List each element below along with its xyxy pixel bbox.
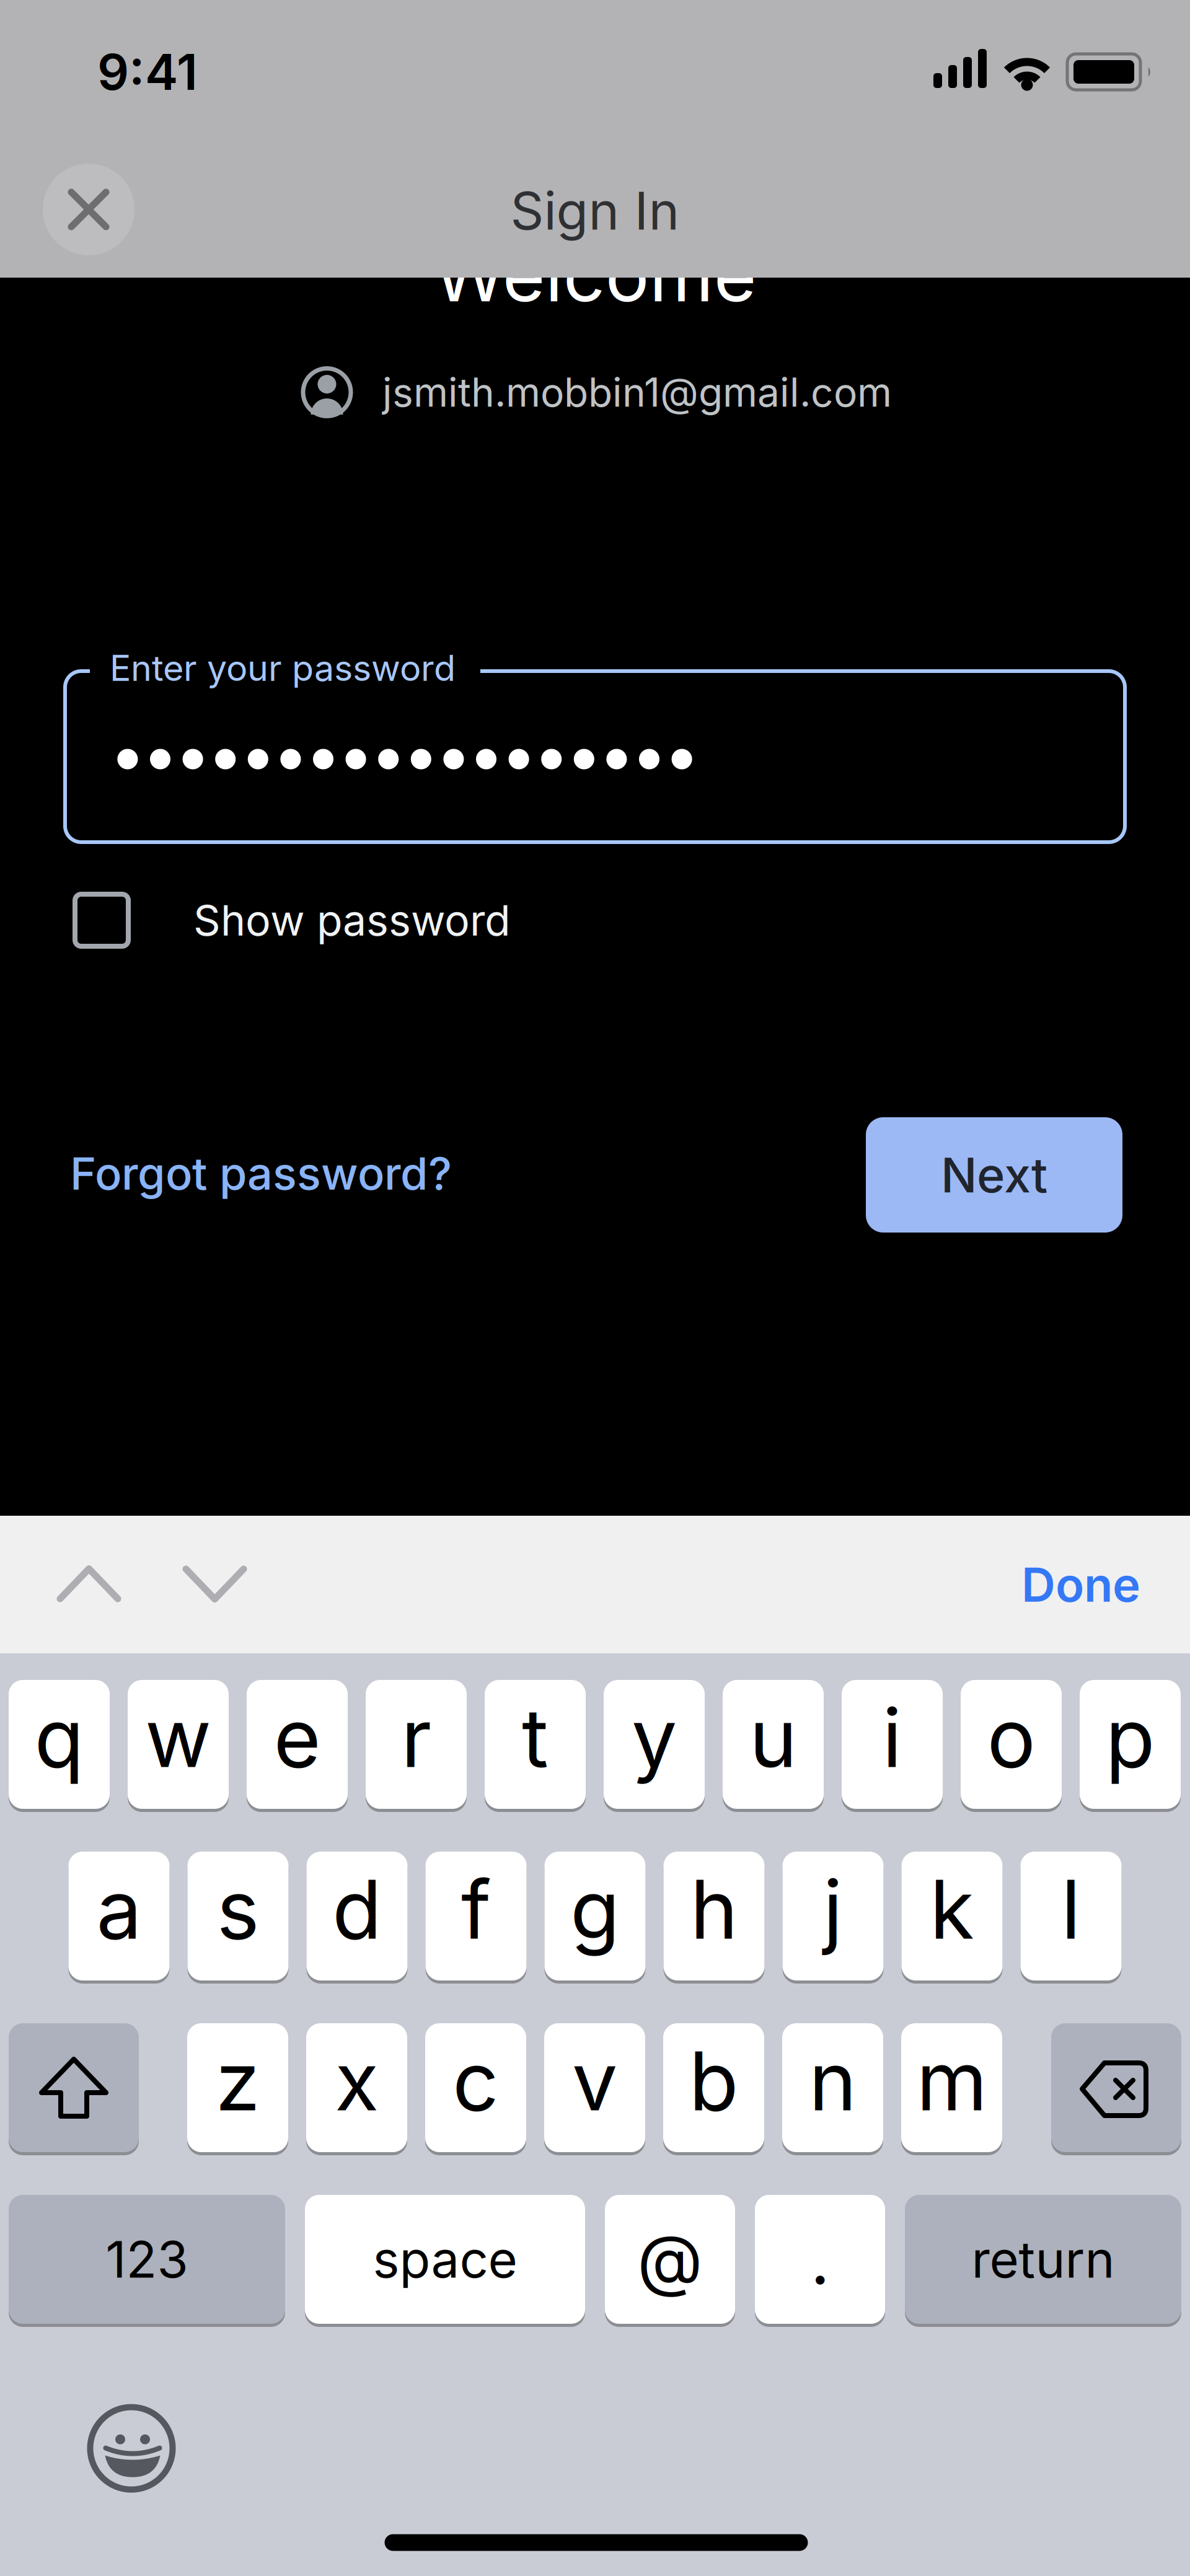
staticText: g xyxy=(570,1861,620,1957)
button[interactable]: Previous field xyxy=(58,1567,120,1601)
staticText: . xyxy=(810,2219,830,2299)
staticText: p xyxy=(1105,1690,1155,1785)
button[interactable]: o xyxy=(961,1680,1062,1809)
staticText: y xyxy=(632,1690,677,1785)
button[interactable]: jsmith.mobbin1@gmail.com xyxy=(303,368,892,416)
button[interactable]: l xyxy=(1020,1852,1122,1980)
button[interactable]: q xyxy=(9,1680,110,1809)
button[interactable]: m xyxy=(901,2023,1002,2152)
staticText: Done xyxy=(1021,1557,1140,1612)
button[interactable]: x xyxy=(306,2023,407,2152)
button[interactable]: return xyxy=(905,2195,1181,2324)
button[interactable]: v xyxy=(544,2023,645,2152)
staticText: Enter your password xyxy=(110,647,456,689)
staticText: return xyxy=(972,2230,1115,2289)
button[interactable]: Forgot password? xyxy=(70,1147,452,1200)
staticText: s xyxy=(217,1861,259,1957)
button[interactable]: z xyxy=(187,2023,288,2152)
button[interactable]: n xyxy=(782,2023,883,2152)
button[interactable]: s xyxy=(187,1852,289,1980)
staticText: x xyxy=(335,2033,379,2129)
button[interactable]: p xyxy=(1080,1680,1181,1809)
staticText: c xyxy=(452,2033,499,2129)
staticText: Next xyxy=(941,1147,1047,1203)
button[interactable]: t xyxy=(485,1680,586,1809)
staticText: w xyxy=(145,1690,211,1785)
button[interactable]: i xyxy=(842,1680,943,1809)
button[interactable]: Next xyxy=(866,1117,1122,1233)
staticText: Show password xyxy=(193,895,511,945)
staticText: i xyxy=(882,1690,902,1785)
button[interactable]: @ xyxy=(605,2195,735,2324)
staticText: o xyxy=(987,1690,1035,1785)
staticText: jsmith.mobbin1@gmail.com xyxy=(382,369,892,416)
button[interactable]: h xyxy=(663,1852,765,1980)
staticText: r xyxy=(401,1690,431,1785)
staticText: h xyxy=(690,1861,738,1957)
staticText: 9:41 xyxy=(97,43,198,101)
staticText: k xyxy=(930,1861,974,1957)
button[interactable]: w xyxy=(128,1680,229,1809)
button[interactable]: k xyxy=(901,1852,1003,1980)
button[interactable]: space xyxy=(305,2195,585,2324)
button[interactable]: Close xyxy=(43,164,134,255)
staticText: q xyxy=(34,1690,84,1785)
button[interactable]: Enter your password xyxy=(65,671,1125,842)
staticText: e xyxy=(274,1690,321,1785)
button[interactable]: f xyxy=(425,1852,527,1980)
staticText: n xyxy=(809,2033,857,2129)
button[interactable]: . xyxy=(755,2195,885,2324)
staticText: v xyxy=(572,2033,617,2129)
button[interactable]: y xyxy=(604,1680,705,1809)
staticText: j xyxy=(823,1861,843,1957)
button[interactable]: d xyxy=(306,1852,408,1980)
button[interactable]: a xyxy=(68,1852,170,1980)
staticText: t xyxy=(522,1690,549,1785)
button[interactable]: e xyxy=(247,1680,348,1809)
button[interactable]: Shift xyxy=(9,2023,139,2152)
staticText: a xyxy=(96,1861,142,1957)
button[interactable]: Done xyxy=(1021,1557,1140,1612)
staticText: Forgot password? xyxy=(70,1147,452,1200)
staticText: 123 xyxy=(106,2230,188,2289)
staticText: f xyxy=(461,1861,491,1957)
button[interactable]: Emoji xyxy=(90,2407,173,2490)
button[interactable]: Next field xyxy=(184,1567,246,1601)
staticText: Welcome xyxy=(434,231,756,318)
button[interactable]: b xyxy=(663,2023,764,2152)
staticText: space xyxy=(373,2230,517,2289)
button[interactable]: u xyxy=(723,1680,824,1809)
staticText: l xyxy=(1061,1861,1081,1957)
staticText: z xyxy=(215,2033,260,2129)
button[interactable]: r xyxy=(366,1680,467,1809)
button[interactable]: c xyxy=(425,2023,526,2152)
staticText: @ xyxy=(637,2219,703,2299)
button[interactable]: 123 xyxy=(9,2195,285,2324)
button[interactable]: Show password xyxy=(75,883,583,957)
staticText: b xyxy=(689,2033,738,2129)
staticText: m xyxy=(916,2033,987,2129)
staticText: u xyxy=(749,1690,797,1785)
button[interactable]: j xyxy=(782,1852,884,1980)
button[interactable]: g xyxy=(544,1852,646,1980)
staticText: d xyxy=(332,1861,382,1957)
staticText: Sign In xyxy=(510,180,680,241)
button[interactable]: Delete xyxy=(1051,2023,1181,2152)
